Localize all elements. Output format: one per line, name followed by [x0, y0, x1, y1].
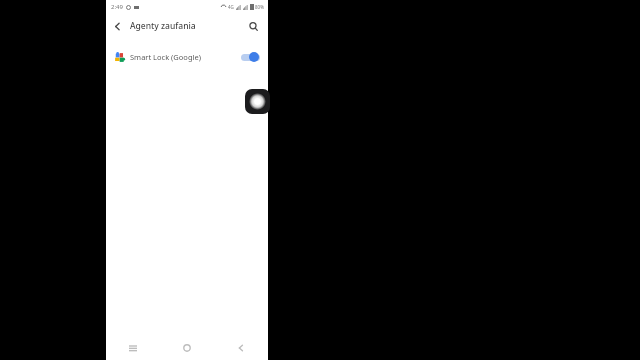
button[interactable]: Home	[160, 336, 214, 360]
staticText: 4G	[228, 4, 234, 10]
button[interactable]: Smart Lock (Google)	[106, 46, 268, 68]
staticText: 80%	[255, 4, 264, 10]
button[interactable]: Recents	[106, 336, 160, 360]
button[interactable]: Back	[214, 336, 268, 360]
staticText: Smart Lock (Google)	[130, 52, 201, 62]
button[interactable]: Back	[106, 15, 128, 37]
other: Recording indicator	[245, 89, 270, 114]
staticText: Agenty zaufania	[130, 20, 196, 32]
staticText: 2:49	[111, 3, 123, 11]
button[interactable]: Search	[242, 15, 264, 37]
button[interactable]: Smart Lock toggle	[241, 51, 260, 63]
